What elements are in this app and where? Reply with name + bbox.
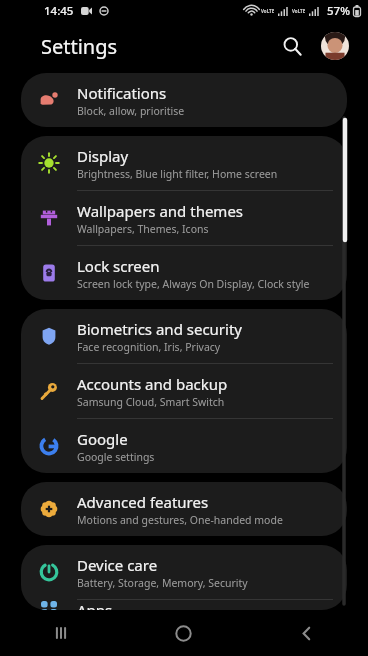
staticText: Motions and gestures, One-handed mode [77, 513, 283, 527]
staticText: Battery, Storage, Memory, Security [77, 576, 248, 590]
staticText: Accounts and backup [77, 374, 228, 394]
button[interactable]: Back [245, 610, 368, 656]
staticText: Brightness, Blue light filter, Home scre… [77, 167, 278, 181]
button[interactable]: Google [21, 419, 347, 473]
staticText: 14:45 [44, 3, 74, 19]
button[interactable]: Notifications [21, 73, 347, 127]
staticText: VoLTE [261, 8, 275, 14]
staticText: Lock screen [77, 256, 160, 276]
button[interactable]: Apps [21, 600, 347, 610]
button[interactable]: Display [21, 136, 347, 191]
staticText: VoLTE [292, 8, 306, 14]
staticText: Wallpapers and themes [77, 201, 244, 221]
staticText: Notifications [77, 83, 167, 103]
staticText: Display [77, 146, 129, 166]
staticText: Apps [77, 600, 113, 610]
button[interactable]: Home [122, 610, 245, 656]
staticText: Google [77, 429, 128, 449]
staticText: Advanced features [77, 492, 209, 512]
button[interactable]: Recents [0, 610, 122, 656]
staticText: Settings [41, 33, 118, 60]
staticText: Google settings [77, 450, 155, 464]
staticText: Samsung Cloud, Smart Switch [77, 395, 225, 409]
button[interactable]: Accounts and backup [21, 364, 347, 419]
button[interactable]: Search [277, 31, 307, 61]
staticText: Face recognition, Iris, Privacy [77, 340, 221, 354]
staticText: Screen lock type, Always On Display, Clo… [77, 277, 310, 291]
staticText: Wallpapers, Themes, Icons [77, 222, 209, 236]
staticText: 57% [327, 3, 350, 19]
button[interactable]: Device care [21, 545, 347, 600]
staticText: Device care [77, 555, 158, 575]
staticText: Block, allow, prioritise [77, 104, 185, 118]
staticText: Biometrics and security [77, 319, 243, 339]
button[interactable]: Profile [321, 32, 349, 60]
button[interactable]: Wallpapers and themes [21, 191, 347, 246]
button[interactable]: Biometrics and security [21, 309, 347, 364]
button[interactable]: Advanced features [21, 482, 347, 536]
button[interactable]: Lock screen [21, 246, 347, 300]
